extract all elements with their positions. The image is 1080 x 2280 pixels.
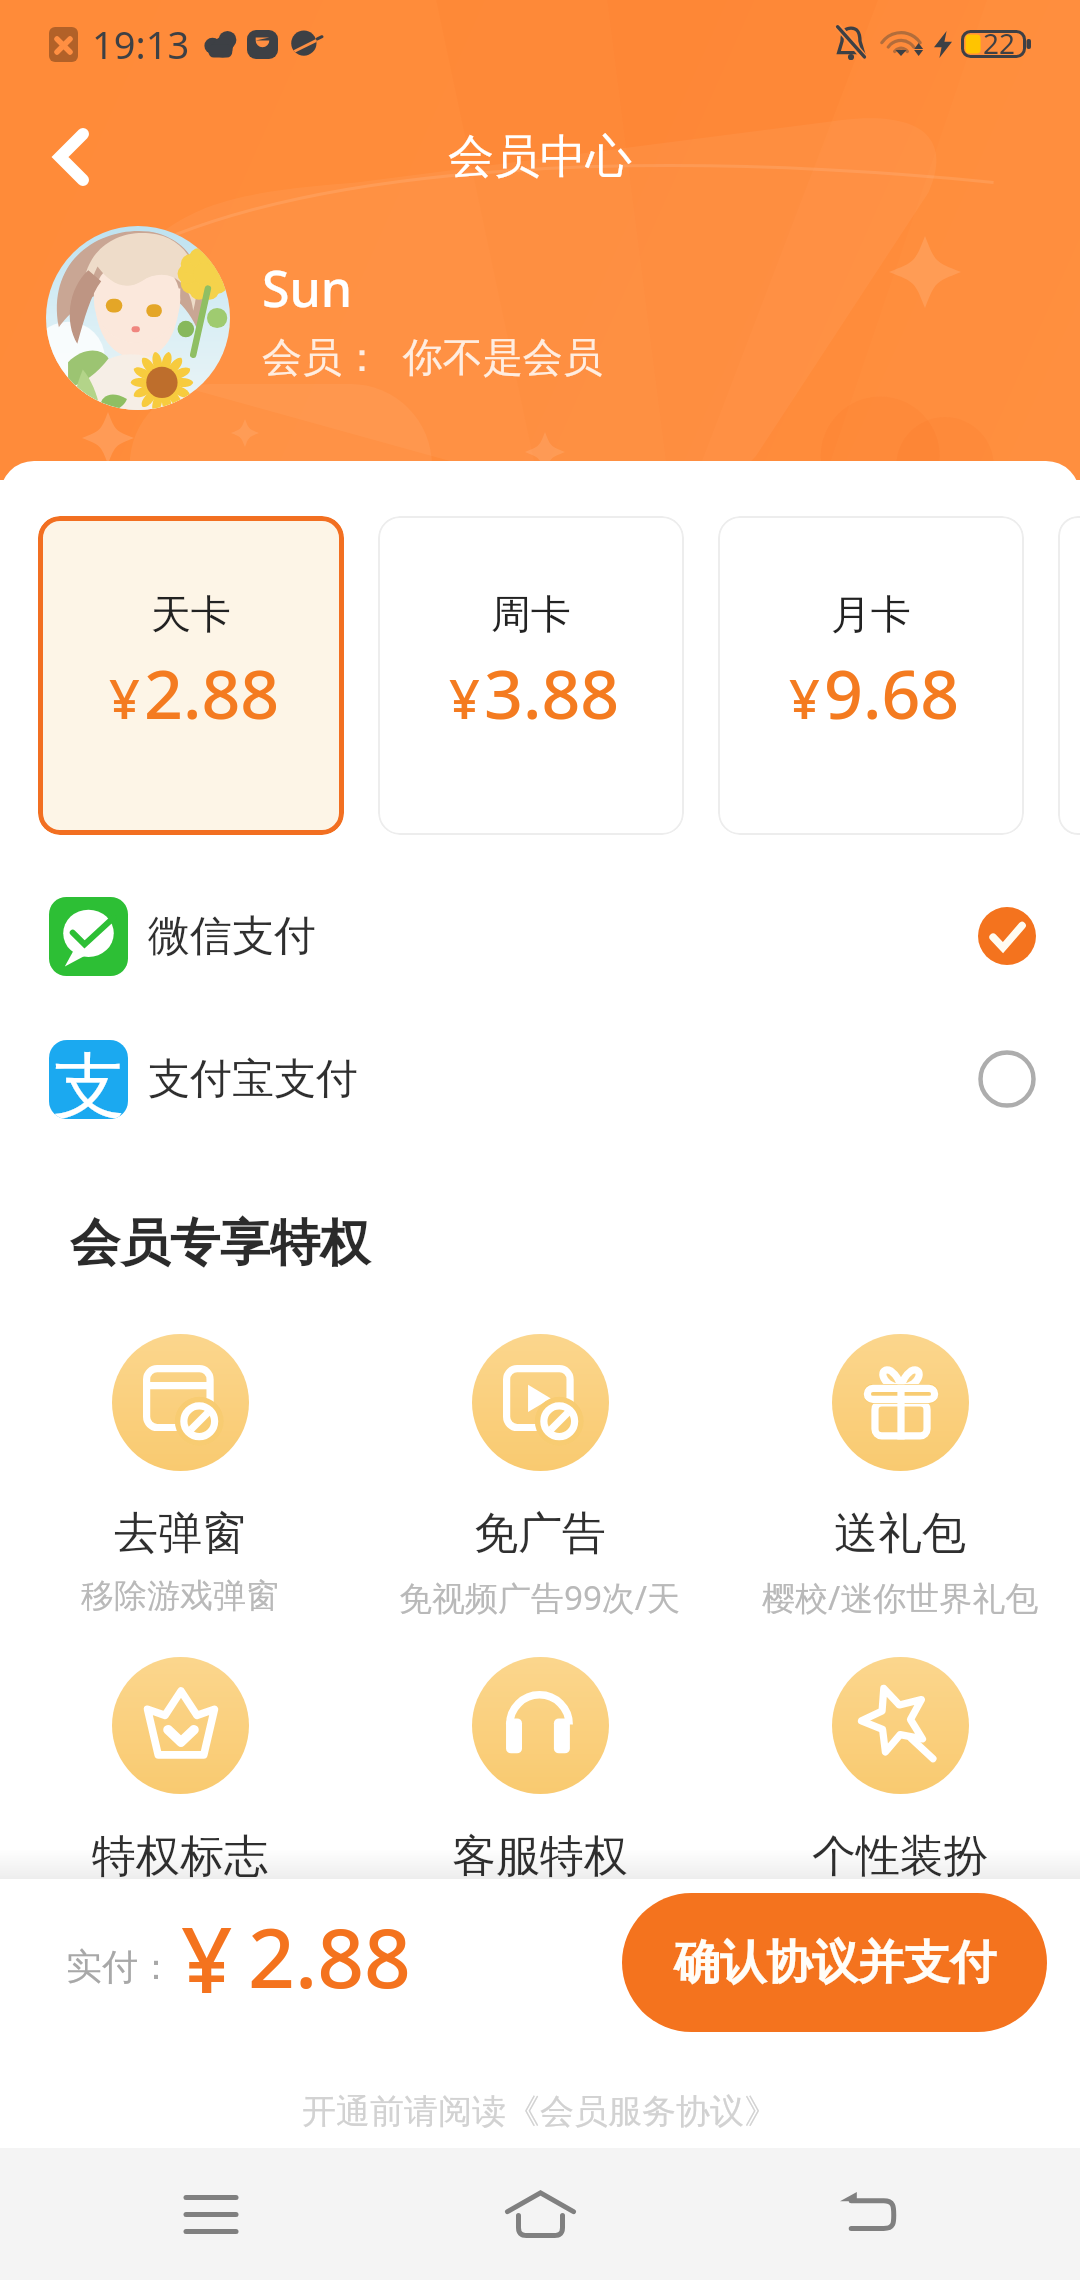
staticText: Sun [262, 254, 353, 322]
button[interactable]: 确认协议并支付 [622, 1893, 1047, 2032]
staticText: 免广告 [474, 1506, 606, 1561]
staticText: 19:13 [92, 18, 190, 70]
staticText: ¥ [449, 661, 480, 735]
button[interactable]: 客服特权 [360, 1657, 720, 1879]
button[interactable]: 月卡 [718, 516, 1024, 835]
staticText: 微信支付 [148, 910, 316, 963]
button[interactable]: 送礼包 [720, 1334, 1080, 1620]
staticText: 月卡 [831, 589, 911, 639]
staticText: 免视频广告99次/天 [399, 1575, 681, 1620]
staticText: 2.88 [248, 1900, 412, 2012]
staticText: ¥ [181, 1897, 233, 2020]
button[interactable]: 周卡 [378, 516, 684, 835]
staticText: 送礼包 [834, 1506, 966, 1561]
staticText: 实付： [66, 1944, 174, 1989]
button[interactable]: Home [460, 2148, 620, 2280]
staticText: 会员中心 [448, 128, 632, 186]
staticText: 移除游戏弹窗 [81, 1575, 279, 1617]
staticText: 会员： 你不是会员 [262, 328, 603, 383]
staticText: 3.88 [484, 646, 620, 739]
button[interactable]: 去弹窗 [0, 1334, 360, 1617]
button[interactable]: 免广告 [360, 1334, 720, 1620]
button[interactable] [1058, 516, 1080, 835]
staticText: 22 [983, 24, 1016, 62]
staticText: 9.68 [824, 646, 960, 739]
staticText: 支付宝支付 [148, 1053, 358, 1106]
button[interactable]: 支 [0, 1039, 1080, 1119]
staticText: 确认协议并支付 [674, 1934, 996, 1992]
staticText: ¥ [789, 661, 820, 735]
staticText: 樱校/迷你世界礼包 [762, 1575, 1039, 1620]
staticText: 支 [53, 1042, 125, 1119]
staticText: ¥ [109, 661, 140, 735]
staticText: 周卡 [491, 589, 571, 639]
button[interactable]: 特权标志 [0, 1657, 360, 1879]
button[interactable]: 天卡 [38, 516, 344, 835]
staticText: 特权标志 [92, 1829, 268, 1879]
button[interactable]: Back [26, 113, 114, 201]
staticText: 会员专享特权 [70, 1212, 370, 1275]
staticText: 客服特权 [452, 1829, 628, 1879]
staticText: 天卡 [151, 589, 231, 639]
button[interactable]: 开通前请阅读《会员服务协议》 [302, 2090, 778, 2133]
button[interactable]: Recent apps [131, 2148, 291, 2280]
button[interactable]: Sun [46, 226, 603, 410]
staticText: 去弹窗 [114, 1506, 246, 1561]
staticText: 2.88 [144, 646, 280, 739]
staticText: 个性装扮 [812, 1829, 988, 1879]
button[interactable]: 个性装扮 [720, 1657, 1080, 1879]
button[interactable]: 微信支付 [0, 896, 1080, 976]
button[interactable]: Back [788, 2148, 948, 2280]
